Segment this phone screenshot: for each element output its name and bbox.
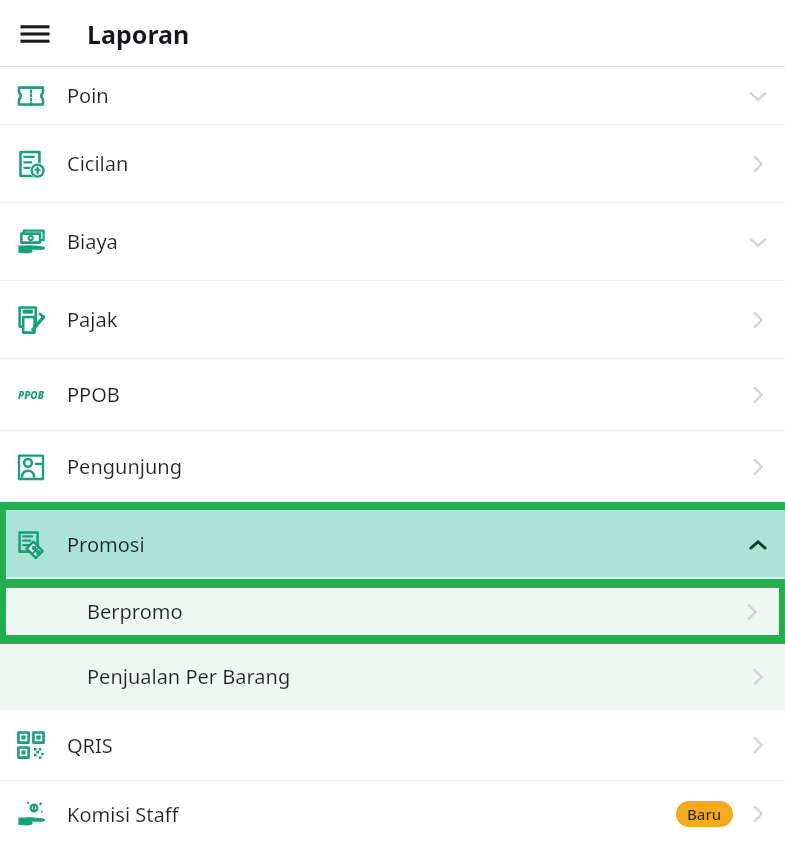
button[interactable]: Komisi Staff — [0, 781, 785, 847]
button[interactable]: QRIS — [0, 710, 785, 780]
button[interactable]: Pengunjung — [0, 431, 785, 502]
staticText: Komisi Staff — [67, 801, 179, 828]
staticText: Berpromo — [87, 598, 183, 625]
button[interactable]: Pajak — [0, 281, 785, 358]
staticText: Biaya — [67, 228, 118, 255]
button[interactable]: Penjualan Per Barang — [0, 644, 785, 709]
button[interactable]: Cicilan — [0, 125, 785, 202]
staticText: Laporan — [87, 17, 190, 51]
staticText: Pengunjung — [67, 453, 182, 480]
staticText: Promosi — [67, 531, 145, 558]
button[interactable]: Biaya — [0, 203, 785, 280]
staticText: QRIS — [67, 732, 113, 759]
staticText: Poin — [67, 82, 109, 109]
staticText: Baru — [687, 804, 722, 824]
staticText: Cicilan — [67, 150, 129, 177]
staticText: Pajak — [67, 306, 118, 333]
button[interactable]: Poin — [0, 67, 785, 124]
staticText: PPOB — [18, 388, 44, 402]
button[interactable]: PPOB — [0, 359, 785, 430]
button[interactable]: Promosi — [6, 510, 785, 579]
staticText: Penjualan Per Barang — [87, 663, 291, 690]
button[interactable]: Berpromo — [6, 588, 779, 635]
staticText: PPOB — [67, 381, 120, 408]
button[interactable]: Open navigation menu — [18, 17, 52, 51]
